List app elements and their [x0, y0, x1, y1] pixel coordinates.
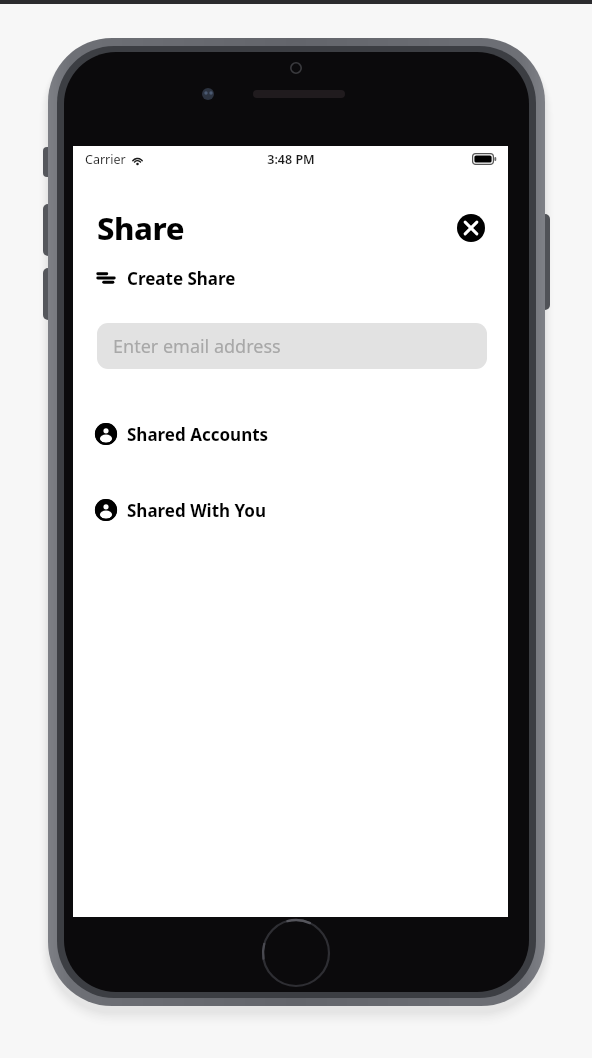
- button[interactable]: Close: [454, 211, 488, 245]
- button[interactable]: Shared With You: [73, 491, 508, 529]
- staticText: 3:48 PM: [267, 151, 315, 168]
- button[interactable]: Create Share: [73, 259, 508, 297]
- staticText: Create Share: [127, 267, 236, 290]
- staticText: Shared Accounts: [127, 423, 269, 446]
- staticText: Shared With You: [127, 499, 267, 522]
- button[interactable]: Enter email address: [97, 323, 487, 369]
- staticText: Enter email address: [113, 334, 281, 359]
- button[interactable]: Shared Accounts: [73, 415, 508, 453]
- staticText: Share: [97, 207, 185, 249]
- staticText: Carrier: [85, 151, 126, 168]
